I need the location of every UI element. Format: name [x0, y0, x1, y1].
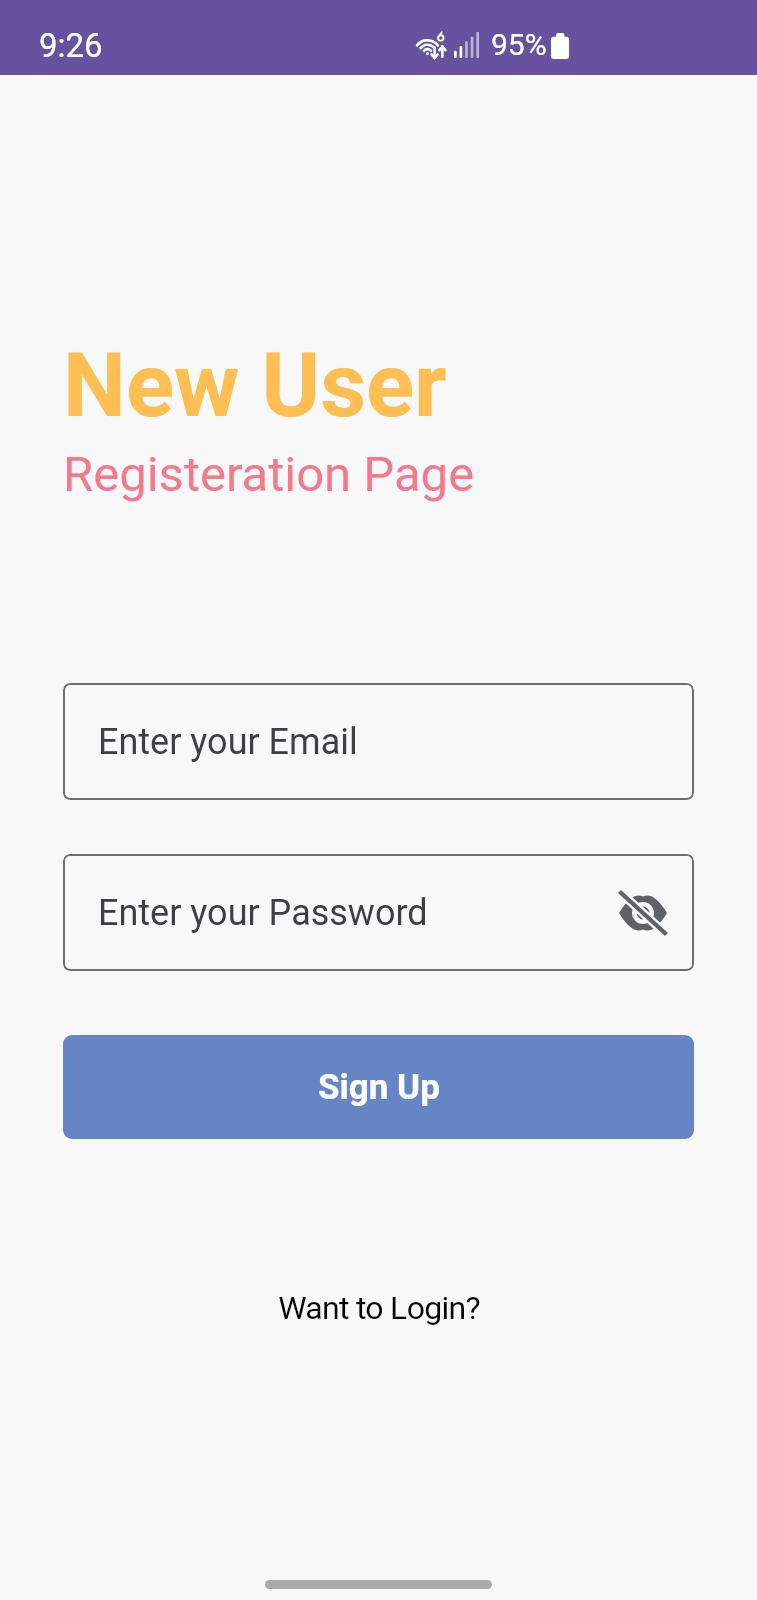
staticText: 9:26 — [39, 26, 103, 65]
button[interactable]: Sign Up — [63, 1035, 694, 1139]
button[interactable]: Show password — [610, 880, 676, 946]
staticText: Enter your Email — [98, 721, 358, 763]
staticText: Enter your Password — [98, 892, 428, 934]
button[interactable]: Want to Login? — [262, 1281, 496, 1335]
staticText: New User — [63, 333, 447, 437]
staticText: 95% — [491, 27, 547, 62]
staticText: Registeration Page — [63, 446, 475, 503]
button[interactable]: Enter your Email — [63, 683, 694, 800]
staticText: Sign Up — [318, 1067, 440, 1108]
button[interactable]: Enter your Password — [63, 854, 694, 971]
staticText: Want to Login? — [278, 1289, 480, 1327]
